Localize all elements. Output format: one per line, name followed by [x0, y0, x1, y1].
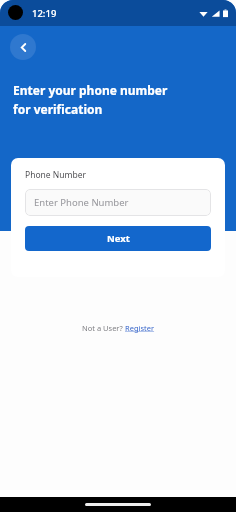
staticText: Enter your phone number — [13, 82, 168, 98]
staticText: Next — [107, 232, 130, 245]
staticText: 12:19 — [32, 7, 57, 20]
button[interactable]: Enter Phone Number — [25, 189, 211, 216]
staticText: Register — [125, 323, 155, 333]
staticText: Not a User? — [82, 323, 125, 333]
button[interactable]: Back — [10, 34, 36, 60]
button[interactable]: Next — [25, 226, 211, 251]
staticText: Enter Phone Number — [34, 196, 129, 209]
staticText: Phone Number — [25, 169, 86, 181]
staticText: for verification — [13, 101, 103, 117]
button[interactable]: Register — [125, 323, 155, 333]
